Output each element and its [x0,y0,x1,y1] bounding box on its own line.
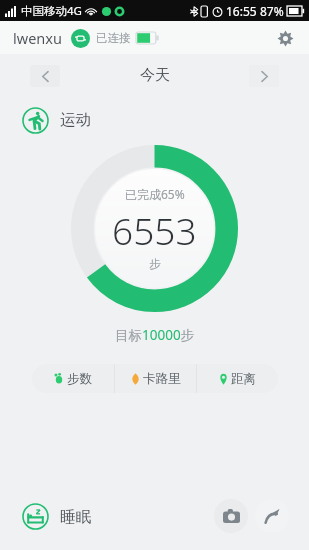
staticText: 步 [149,257,161,271]
staticText: 睡眠 [60,507,91,527]
staticText: 卡路里 [143,371,181,387]
staticText: 今天 [140,66,170,85]
other: Device connected [71,29,90,48]
staticText: 运动 [60,110,91,130]
staticText: 目标10000步 [115,326,195,344]
button[interactable]: 运动 [22,103,309,137]
staticText: 87% [260,3,284,19]
button[interactable]: Camera [214,499,248,533]
staticText: 步数 [67,371,92,387]
button[interactable]: Settings [271,24,299,52]
button[interactable]: 卡路里 [115,364,196,393]
button[interactable]: 睡眠 [22,503,91,530]
button[interactable]: Share [255,499,289,533]
staticText: 6553 [112,205,197,255]
staticText: 中国移动4G [21,3,82,19]
staticText: 16:55 [226,3,257,19]
button[interactable]: Next day [249,65,279,87]
button[interactable]: Previous day [30,65,60,87]
button[interactable]: 距离 [197,364,278,393]
staticText: 已连接 [96,31,131,45]
staticText: 距离 [231,371,256,387]
button[interactable]: 步数 [32,364,114,393]
staticText: 已完成65% [125,186,185,202]
staticText: lwenxu [13,28,62,48]
